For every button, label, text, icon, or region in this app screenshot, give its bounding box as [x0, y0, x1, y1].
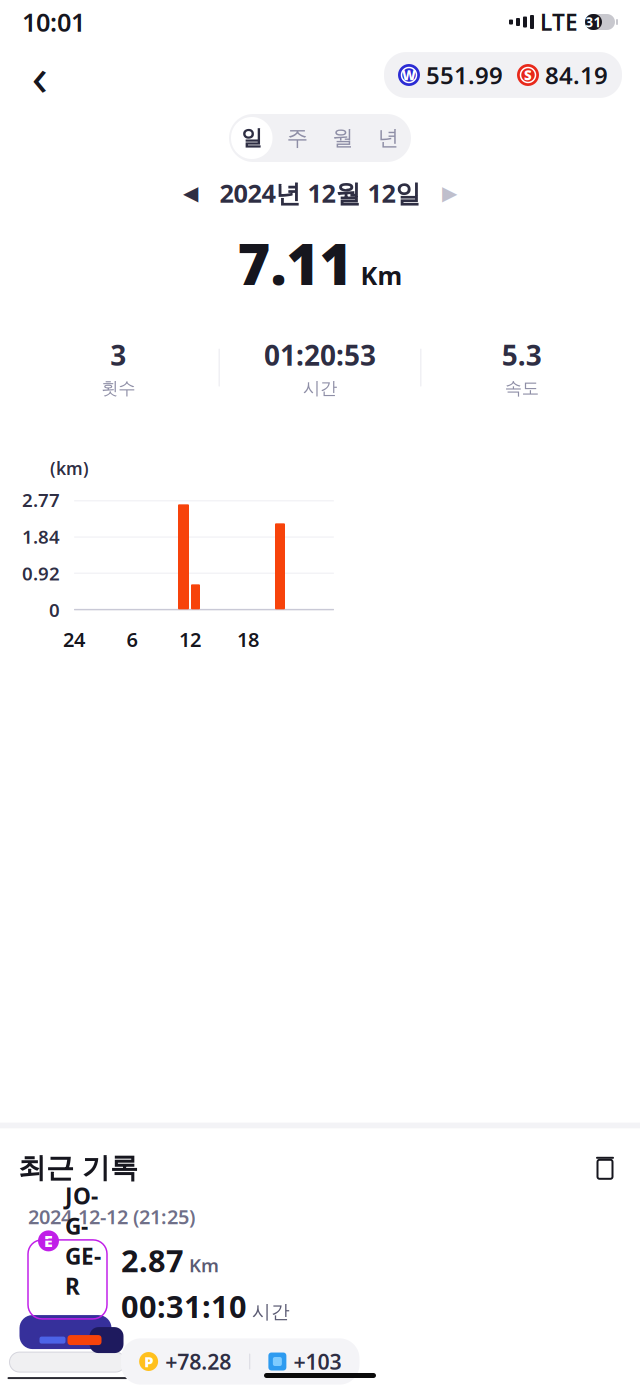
- staticText: 최근 기록: [18, 1151, 138, 1185]
- staticText: 2.87: [121, 1240, 184, 1281]
- staticText: 시간: [303, 377, 337, 399]
- button[interactable]: 년: [365, 114, 411, 162]
- staticText: ‹: [31, 40, 48, 110]
- staticText: 7.11: [237, 226, 352, 300]
- staticText: 551.99: [426, 59, 503, 91]
- staticText: 84.19: [545, 59, 608, 91]
- staticText: 12: [179, 626, 201, 652]
- staticText: +103: [293, 1347, 341, 1376]
- staticText: 5.3: [502, 336, 542, 374]
- staticText: E: [44, 1230, 53, 1251]
- staticText: 주: [287, 125, 308, 151]
- staticText: 18: [237, 626, 259, 652]
- staticText: 횟수: [101, 377, 135, 399]
- staticText: 2024년 12월 12일: [219, 176, 420, 210]
- staticText: JOGGER: [65, 1181, 101, 1301]
- button[interactable]: Back: [18, 53, 62, 97]
- staticText: 6: [126, 626, 137, 652]
- staticText: P: [144, 1352, 153, 1371]
- staticText: 월: [332, 125, 353, 151]
- staticText: 2024-12-12 (21:25): [28, 1203, 195, 1230]
- button[interactable]: 월: [320, 114, 365, 162]
- staticText: 1.84: [22, 524, 60, 549]
- staticText: 속도: [505, 377, 539, 399]
- button[interactable]: W: [384, 52, 622, 98]
- staticText: 0.92: [22, 561, 60, 586]
- staticText: S: [524, 66, 532, 84]
- staticText: 24: [63, 626, 85, 652]
- staticText: 31: [585, 13, 601, 31]
- staticText: ◀: [183, 182, 198, 204]
- staticText: LTE: [540, 7, 578, 37]
- staticText: ▶: [442, 182, 457, 204]
- staticText: 10:01: [22, 5, 85, 39]
- staticText: +78.28: [165, 1347, 231, 1376]
- staticText: 년: [378, 125, 399, 151]
- staticText: 01:20:53: [264, 336, 376, 374]
- staticText: 2.77: [22, 487, 60, 512]
- staticText: 3: [110, 336, 126, 374]
- button[interactable]: Delete records: [588, 1151, 622, 1185]
- button[interactable]: 2024-12-12 (21:25): [18, 1201, 622, 1373]
- staticText: 시간: [252, 1300, 290, 1323]
- staticText: 0: [49, 597, 60, 622]
- button[interactable]: Previous day: [173, 176, 207, 210]
- staticText: Km: [360, 258, 402, 292]
- staticText: W: [402, 66, 416, 84]
- button[interactable]: Next day: [432, 176, 466, 210]
- staticText: Km: [189, 1252, 219, 1277]
- staticText: 일: [241, 125, 262, 151]
- button[interactable]: 주: [274, 114, 320, 162]
- staticText: 00:31:10: [121, 1286, 247, 1326]
- button[interactable]: 일: [229, 114, 274, 162]
- staticText: (km): [50, 457, 89, 480]
